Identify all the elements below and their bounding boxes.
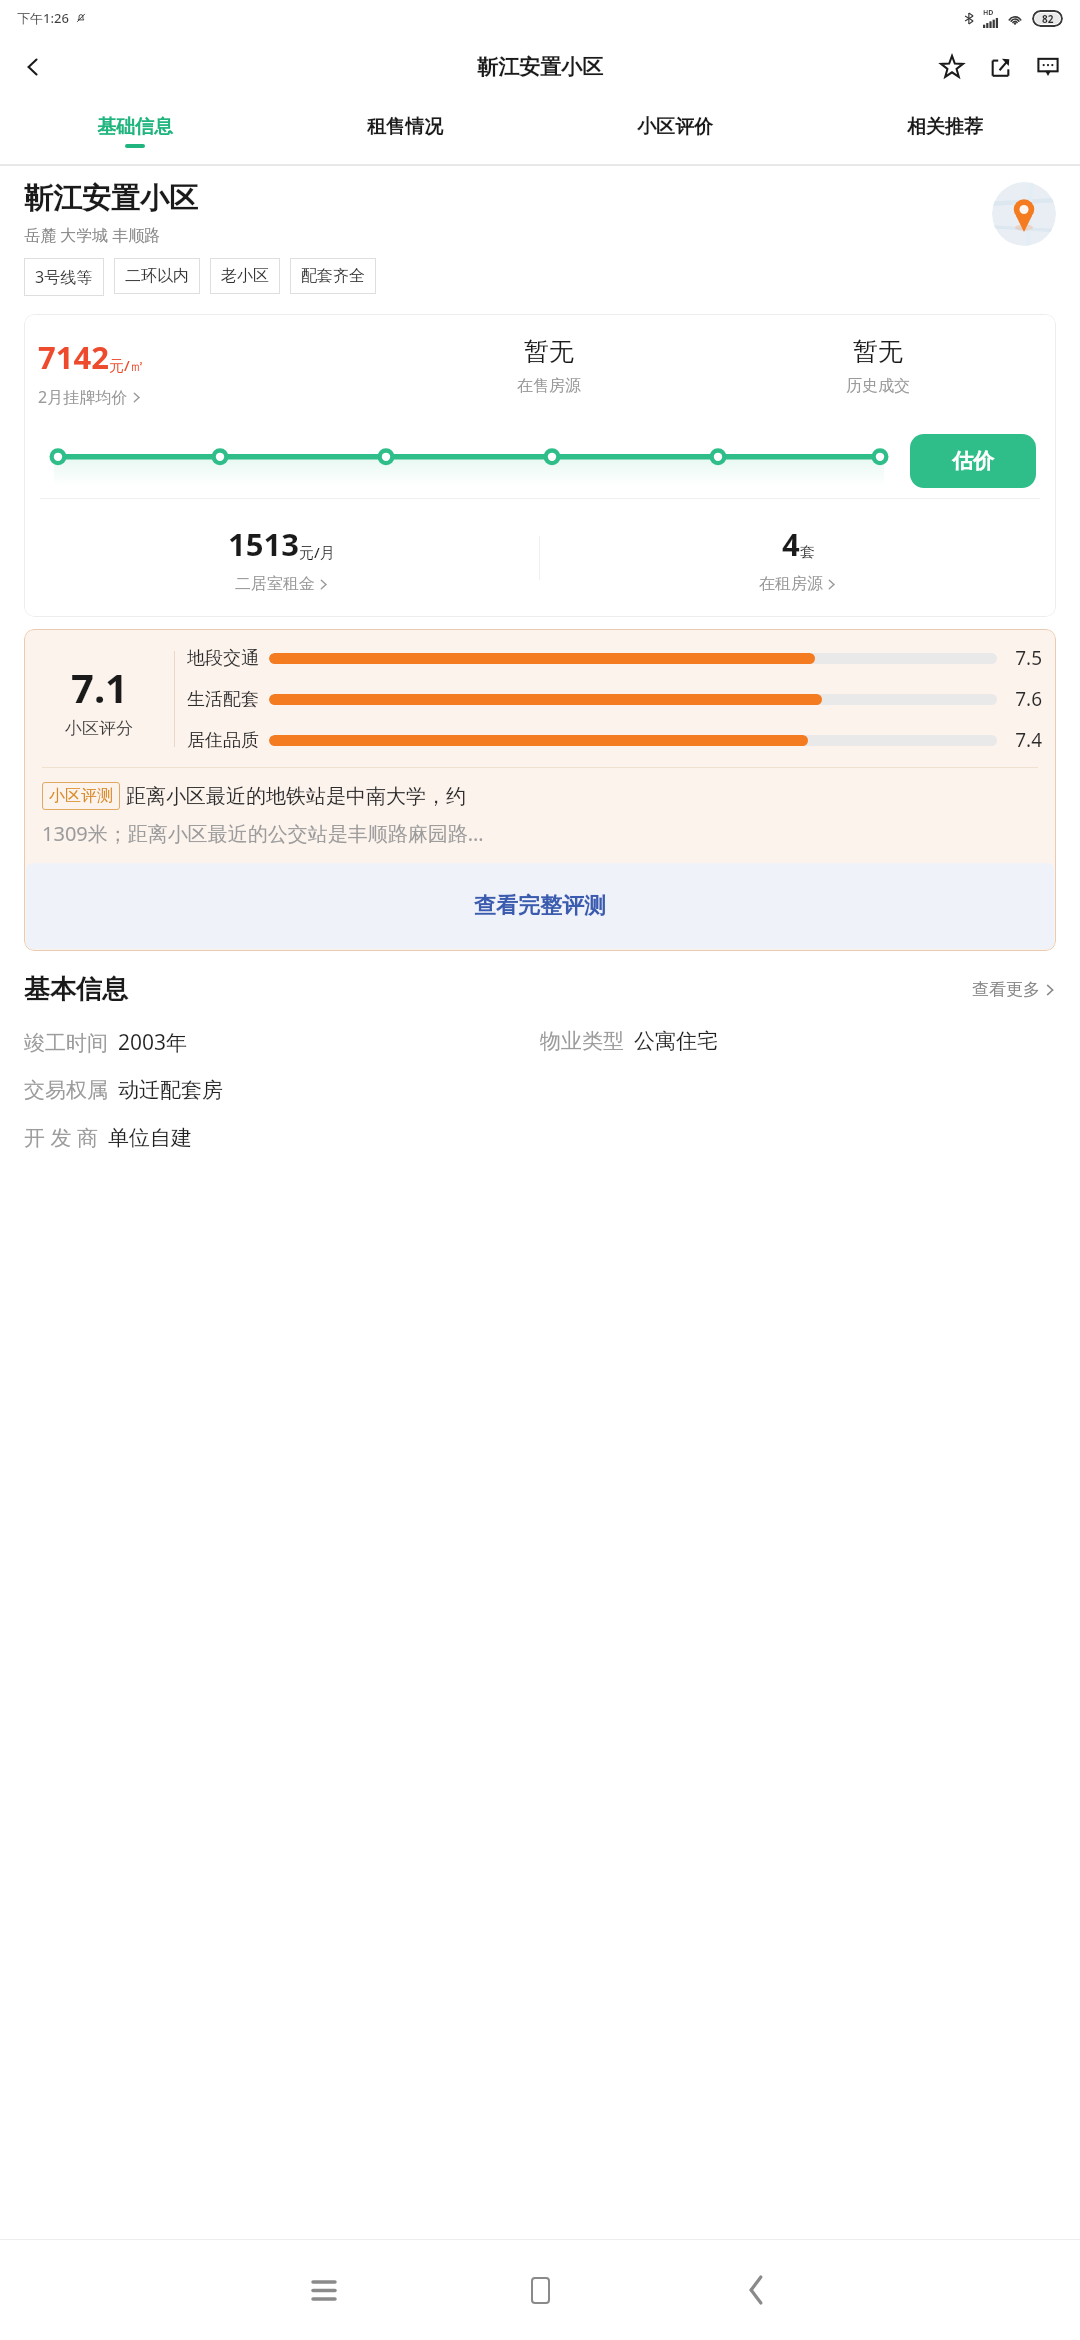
button[interactable]: Recents <box>216 2240 432 2340</box>
staticText: 7.5 <box>1008 645 1042 671</box>
staticText: 老小区 <box>221 266 269 286</box>
staticText: 7.1 <box>71 660 128 714</box>
staticText: 小区评价 <box>637 115 713 139</box>
staticText: 在售房源 <box>517 376 581 396</box>
staticText: 竣工时间 <box>24 1030 108 1056</box>
staticText: 小区评分 <box>65 718 133 739</box>
button[interactable]: Comments <box>1024 43 1072 91</box>
staticText: 查看更多 <box>972 979 1040 1000</box>
button[interactable]: 二环以内 <box>114 258 200 294</box>
staticText: 2月挂牌均价 <box>38 386 128 408</box>
button[interactable]: Back <box>648 2240 864 2340</box>
staticText: 小区评测 <box>49 786 113 806</box>
staticText: 动迁配套房 <box>118 1077 223 1103</box>
staticText: 7.6 <box>1008 686 1042 712</box>
staticText: 7142 <box>38 336 109 378</box>
staticText: 3号线等 <box>35 266 93 288</box>
staticText: 靳江安置小区 <box>477 54 603 80</box>
staticText: 下午1:26 <box>17 9 69 27</box>
button[interactable]: 估价 <box>910 434 1036 488</box>
staticText: 居住品质 <box>187 729 259 752</box>
staticText: 查看完整评测 <box>474 892 606 920</box>
staticText: 物业类型 <box>540 1028 624 1054</box>
staticText: 在租房源 <box>759 574 823 594</box>
button[interactable]: 老小区 <box>210 258 280 294</box>
staticText: 暂无 <box>524 336 574 367</box>
button[interactable]: Back <box>8 42 58 92</box>
button[interactable]: 小区评价 <box>540 98 810 164</box>
staticText: 历史成交 <box>846 376 910 396</box>
staticText: 单位自建 <box>108 1125 192 1151</box>
staticText: 公寓住宅 <box>634 1028 718 1054</box>
staticText: 相关推荐 <box>907 115 983 139</box>
button[interactable]: 二居室租金 <box>235 574 329 594</box>
staticText: 二环以内 <box>125 266 189 286</box>
staticText: 1513 <box>228 523 299 565</box>
staticText: 基本信息 <box>24 973 128 1006</box>
staticText: 元/㎡ <box>109 355 145 375</box>
staticText: 2003年 <box>118 1028 188 1057</box>
button[interactable]: 租售情况 <box>270 98 540 164</box>
staticText: 岳麓 大学城 丰顺路 <box>24 224 161 246</box>
button[interactable]: 在租房源 <box>759 574 837 594</box>
staticText: 租售情况 <box>367 115 443 139</box>
staticText: 基础信息 <box>97 115 173 139</box>
staticText: 7.4 <box>1008 727 1042 753</box>
button[interactable]: Favorite <box>928 43 976 91</box>
button[interactable]: 2月挂牌均价 <box>38 386 142 408</box>
staticText: 估价 <box>952 448 994 474</box>
staticText: 交易权属 <box>24 1077 108 1103</box>
staticText: 开 发 商 <box>24 1123 98 1152</box>
button[interactable]: 相关推荐 <box>810 98 1080 164</box>
button[interactable]: 查看完整评测 <box>26 863 1054 949</box>
staticText: HD <box>983 8 994 18</box>
button[interactable]: 配套齐全 <box>290 258 376 294</box>
button[interactable]: 查看更多 <box>972 979 1056 1000</box>
staticText: 82 <box>1042 12 1054 26</box>
button[interactable]: Map <box>992 182 1056 246</box>
staticText: 暂无 <box>853 336 903 367</box>
staticText: 二居室租金 <box>235 574 315 594</box>
staticText: 地段交通 <box>187 647 259 670</box>
button[interactable]: Share <box>976 43 1024 91</box>
staticText: 元/月 <box>299 542 335 562</box>
staticText: 配套齐全 <box>301 266 365 286</box>
staticText: 套 <box>800 543 815 562</box>
button[interactable]: 3号线等 <box>24 258 104 296</box>
staticText: 距离小区最近的地铁站是中南大学，约 <box>126 784 466 809</box>
staticText: 4 <box>782 523 800 565</box>
button[interactable]: Home <box>432 2240 648 2340</box>
staticText: 靳江安置小区 <box>24 180 198 217</box>
staticText: 1309米；距离小区最近的公交站是丰顺路麻园路… <box>42 820 484 847</box>
button[interactable]: 基础信息 <box>0 98 270 164</box>
staticText: 生活配套 <box>187 688 259 711</box>
